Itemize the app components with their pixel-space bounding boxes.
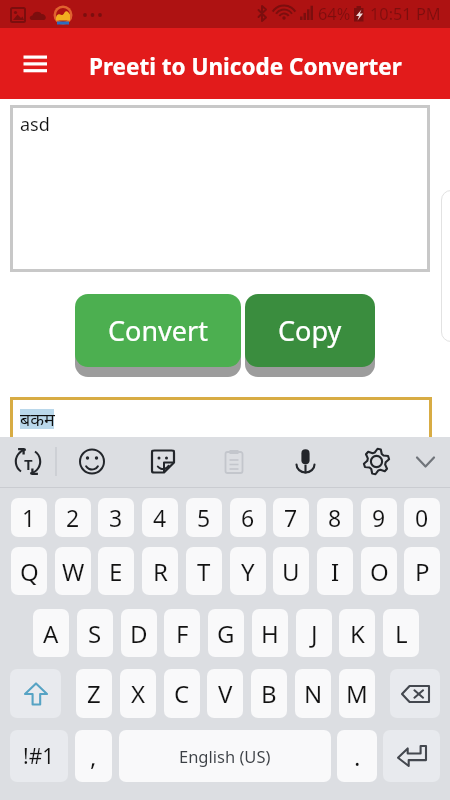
button[interactable]: B <box>251 669 287 718</box>
staticText: T <box>197 555 211 588</box>
button[interactable]: Q <box>11 547 47 595</box>
button[interactable]: W <box>55 547 91 595</box>
button[interactable]: Y <box>230 547 266 595</box>
staticText: 9 <box>372 502 386 533</box>
staticText: Q <box>20 555 39 588</box>
staticText: N <box>304 677 323 710</box>
staticText: Y <box>241 555 255 588</box>
staticText: !#1 <box>23 742 55 771</box>
button[interactable]: English (US) <box>119 730 331 782</box>
staticText: O <box>370 555 389 588</box>
button[interactable]: T <box>186 547 222 595</box>
button[interactable]: C <box>164 669 200 718</box>
staticText: Copy <box>278 312 342 349</box>
staticText: 64% <box>318 3 351 25</box>
staticText: H <box>261 617 279 650</box>
button[interactable]: , <box>75 730 112 782</box>
staticText: S <box>88 617 102 650</box>
button[interactable]: Z <box>76 669 112 718</box>
staticText: A <box>43 617 59 650</box>
staticText: 7 <box>284 502 298 533</box>
button[interactable]: G <box>208 609 244 657</box>
button[interactable]: M <box>339 669 375 718</box>
staticText: E <box>109 555 123 588</box>
staticText: 1 <box>22 502 36 533</box>
staticText: . <box>354 740 361 773</box>
button[interactable]: 9 <box>361 498 397 537</box>
staticText: V <box>218 677 233 710</box>
staticText: G <box>217 617 235 650</box>
button[interactable]: Copy <box>245 294 375 377</box>
button[interactable]: 8 <box>317 498 353 537</box>
staticText: U <box>282 555 300 588</box>
staticText: बकम <box>20 407 55 432</box>
button[interactable]: 6 <box>230 498 266 537</box>
staticText: I <box>331 555 340 588</box>
button[interactable]: X <box>120 669 156 718</box>
staticText: X <box>131 677 146 710</box>
staticText: J <box>311 617 318 650</box>
button[interactable]: O <box>361 547 397 595</box>
button[interactable]: N <box>295 669 331 718</box>
staticText: 5 <box>197 502 211 533</box>
button[interactable]: 4 <box>142 498 178 537</box>
button[interactable]: V <box>207 669 243 718</box>
staticText: T <box>24 454 33 474</box>
staticText: L <box>395 617 408 650</box>
staticText: B <box>261 677 277 710</box>
staticText: asd <box>20 112 50 137</box>
staticText: K <box>350 617 365 650</box>
staticText: 6 <box>241 502 255 533</box>
staticText: F <box>176 617 189 650</box>
button[interactable]: Convert <box>75 294 241 377</box>
staticText: D <box>130 617 148 650</box>
button[interactable]: Enter <box>383 730 440 782</box>
button[interactable]: A <box>33 609 69 657</box>
button[interactable]: Backspace <box>390 669 440 718</box>
staticText: 8 <box>328 502 342 533</box>
button[interactable]: 7 <box>273 498 309 537</box>
button[interactable]: K <box>339 609 375 657</box>
staticText: M <box>346 677 368 710</box>
staticText: C <box>174 677 190 710</box>
staticText: R <box>153 555 168 588</box>
button[interactable]: . <box>337 730 377 782</box>
staticText: 10:51 PM <box>370 3 441 25</box>
staticText: 4 <box>153 502 167 533</box>
button[interactable]: 1 <box>11 498 47 537</box>
button[interactable]: Open navigation menu <box>16 44 56 84</box>
staticText: W <box>62 555 85 588</box>
button[interactable]: D <box>121 609 157 657</box>
staticText: 2 <box>66 502 80 533</box>
button[interactable]: U <box>273 547 309 595</box>
button[interactable]: E <box>98 547 134 595</box>
button[interactable]: Shift <box>10 669 61 718</box>
button[interactable]: 0 <box>404 498 440 537</box>
button[interactable]: asd <box>10 105 430 272</box>
button[interactable]: F <box>164 609 200 657</box>
button[interactable]: L <box>383 609 419 657</box>
staticText: 3 <box>109 502 123 533</box>
staticText: P <box>415 555 430 588</box>
staticText: Preeti to Unicode Converter <box>89 51 402 82</box>
button[interactable]: !#1 <box>10 730 68 782</box>
staticText: 0 <box>415 502 429 533</box>
button[interactable]: R <box>142 547 178 595</box>
button[interactable]: J <box>296 609 332 657</box>
button[interactable]: H <box>252 609 288 657</box>
button[interactable]: 2 <box>55 498 91 537</box>
button[interactable]: बकम <box>10 397 432 445</box>
staticText: English (US) <box>179 745 271 767</box>
button[interactable]: S <box>77 609 113 657</box>
button[interactable]: P <box>404 547 440 595</box>
staticText: , <box>90 740 97 773</box>
button[interactable]: 5 <box>186 498 222 537</box>
staticText: Convert <box>108 312 208 349</box>
button[interactable]: 3 <box>98 498 134 537</box>
staticText: Z <box>87 677 101 710</box>
button[interactable]: I <box>317 547 353 595</box>
